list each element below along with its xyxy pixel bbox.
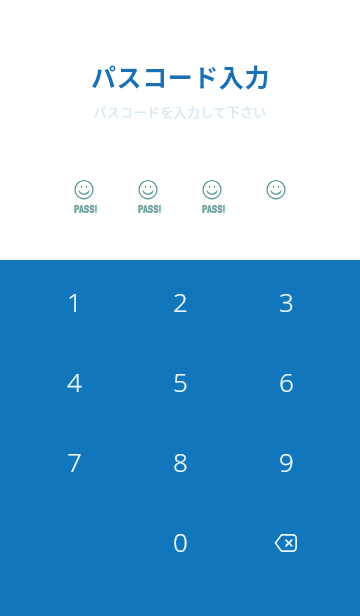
staticText: パスコード入力 <box>91 58 270 94</box>
staticText: 1 <box>67 284 82 319</box>
button[interactable]: 5 <box>127 341 233 421</box>
button[interactable]: 8 <box>127 421 233 501</box>
staticText: パスコードを入力して下さい <box>93 102 267 121</box>
staticText: 7 <box>67 444 82 479</box>
staticText: 9 <box>279 444 294 479</box>
staticText: 0 <box>173 524 188 559</box>
button[interactable]: 0 <box>127 501 233 581</box>
staticText: 5 <box>173 364 188 399</box>
staticText: 2 <box>173 284 188 319</box>
staticText: 4 <box>67 364 82 399</box>
staticText: PASS! <box>74 203 98 216</box>
staticText: PASS! <box>138 203 162 216</box>
staticText: 8 <box>173 444 188 479</box>
staticText: PASS! <box>202 203 226 216</box>
button[interactable]: 2 <box>127 261 233 341</box>
staticText: 3 <box>279 284 294 319</box>
button[interactable]: 9 <box>233 421 339 501</box>
staticText: 6 <box>279 364 294 399</box>
button[interactable]: 3 <box>233 261 339 341</box>
button[interactable]: Backspace <box>233 501 339 581</box>
button[interactable]: 7 <box>21 421 127 501</box>
button[interactable]: 4 <box>21 341 127 421</box>
button[interactable]: 6 <box>233 341 339 421</box>
button[interactable]: 1 <box>21 261 127 341</box>
